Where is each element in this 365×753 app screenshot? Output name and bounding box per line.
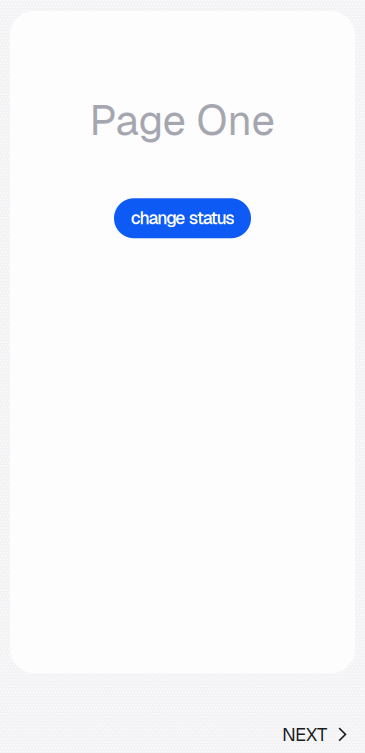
- staticText: change status: [131, 207, 234, 229]
- staticText: NEXT: [282, 722, 327, 746]
- button[interactable]: change status: [114, 198, 251, 238]
- button[interactable]: NEXT: [262, 708, 365, 753]
- staticText: Page One: [89, 93, 275, 147]
